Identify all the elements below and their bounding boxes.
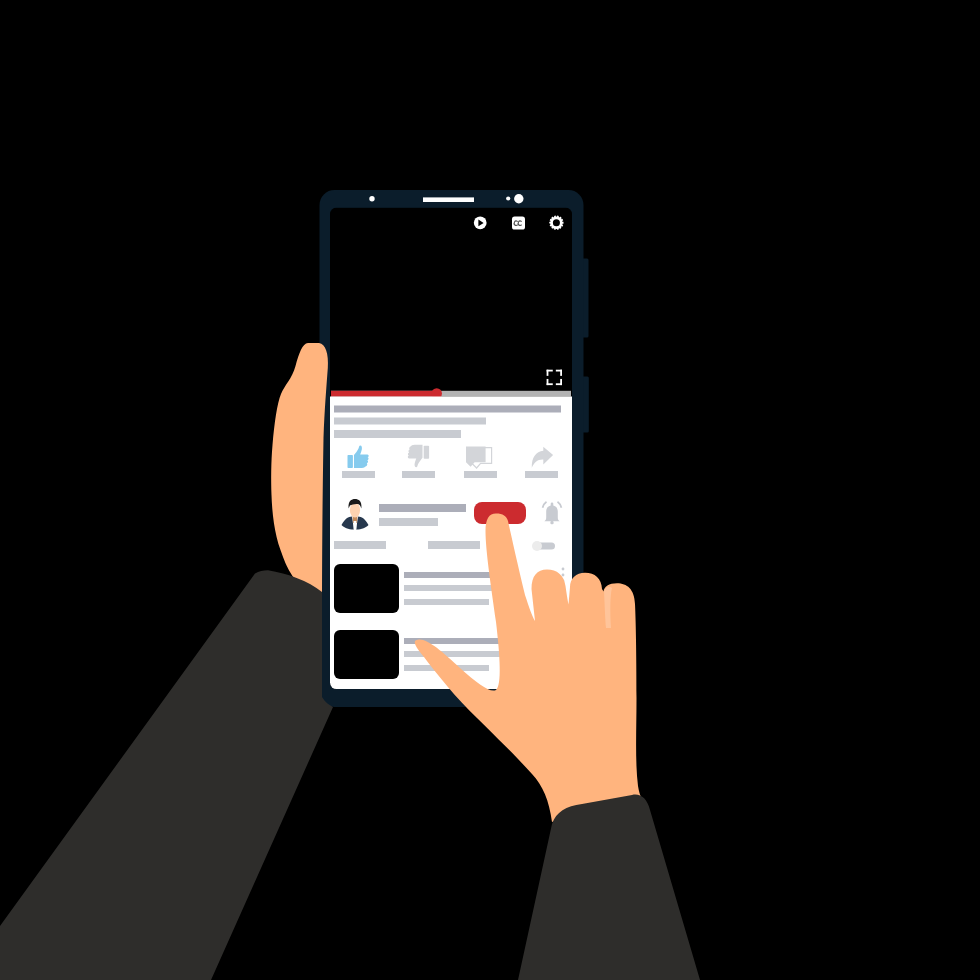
button[interactable]: Dislike: [398, 442, 440, 480]
button[interactable]: Video 2: [332, 628, 570, 680]
button[interactable]: Comment: [458, 442, 500, 480]
button[interactable]: Notifications: [540, 500, 566, 526]
button[interactable]: Settings: [548, 214, 566, 232]
button[interactable]: Channel: [336, 496, 470, 530]
button[interactable]: Share: [520, 442, 562, 480]
button[interactable]: Closed captions: [510, 214, 528, 232]
button[interactable]: Like: [340, 442, 382, 480]
button[interactable]: Play: [472, 214, 490, 232]
button[interactable]: Video 1: [332, 562, 570, 614]
button[interactable]: Full screen: [546, 369, 564, 387]
button[interactable]: Video progress: [330, 385, 572, 401]
button[interactable]: Subscribe: [474, 502, 526, 524]
button[interactable]: Autoplay: [530, 538, 562, 554]
